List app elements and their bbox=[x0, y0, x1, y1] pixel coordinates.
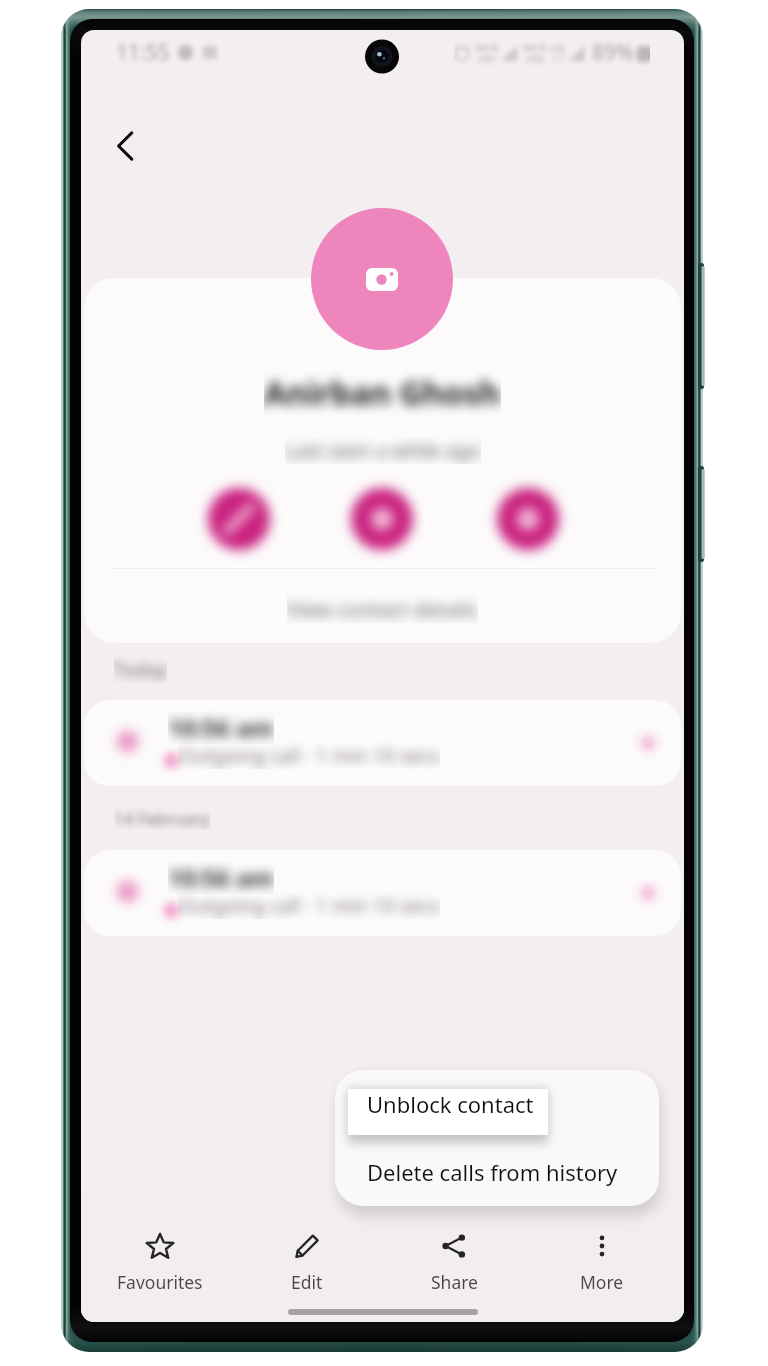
staticText: Last seen a while ago bbox=[285, 437, 481, 464]
staticText: View contact details bbox=[287, 595, 478, 623]
staticText: 10:56 am bbox=[168, 861, 274, 894]
staticText: Favourites bbox=[117, 1270, 203, 1294]
button[interactable]: Favourites bbox=[105, 1232, 215, 1307]
button[interactable]: Back bbox=[93, 114, 157, 178]
button[interactable]: Message bbox=[351, 488, 413, 550]
staticText: Edit bbox=[291, 1270, 323, 1294]
button[interactable]: Video call bbox=[497, 488, 559, 550]
staticText: More bbox=[580, 1270, 624, 1294]
staticText: Unblock contact bbox=[367, 1089, 534, 1119]
staticText: LTE2 bbox=[526, 53, 544, 64]
button[interactable]: 10:56 am bbox=[84, 700, 681, 786]
staticText: VoLTE bbox=[475, 42, 499, 53]
button[interactable]: Unblock contact bbox=[335, 1070, 659, 1138]
button[interactable]: Block contact bbox=[208, 488, 270, 550]
staticText: Share bbox=[431, 1270, 478, 1294]
staticText: Today bbox=[114, 657, 167, 683]
button[interactable]: Contact photo bbox=[311, 208, 453, 350]
staticText: 11:55 bbox=[116, 38, 170, 67]
staticText: Anirban Ghosh bbox=[264, 371, 501, 415]
staticText: Outgoing call · 1 min 10 secs bbox=[178, 742, 440, 769]
staticText: LTE1 bbox=[478, 53, 496, 64]
staticText: VoLTE bbox=[523, 42, 547, 53]
staticText: Outgoing call · 1 min 10 secs bbox=[178, 892, 440, 919]
button[interactable]: 10:56 am bbox=[84, 850, 681, 936]
staticText: 89% bbox=[592, 38, 634, 67]
staticText: Delete calls from history bbox=[367, 1157, 618, 1187]
staticText: LTE bbox=[550, 42, 566, 54]
staticText: 10:56 am bbox=[168, 711, 274, 744]
staticText: 14 February bbox=[114, 807, 210, 830]
button[interactable]: More bbox=[547, 1232, 657, 1307]
button[interactable]: Edit bbox=[252, 1232, 362, 1307]
button[interactable]: Delete calls from history bbox=[335, 1138, 659, 1206]
button[interactable]: Share bbox=[399, 1232, 509, 1307]
